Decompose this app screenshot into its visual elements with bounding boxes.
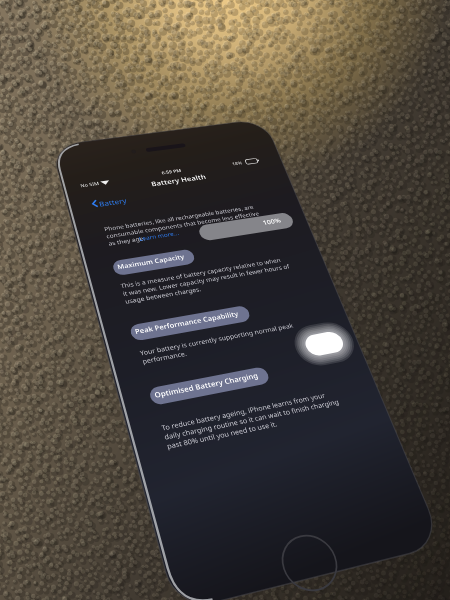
button[interactable]: Photo of an iPhone showing the Battery H… xyxy=(0,0,450,600)
